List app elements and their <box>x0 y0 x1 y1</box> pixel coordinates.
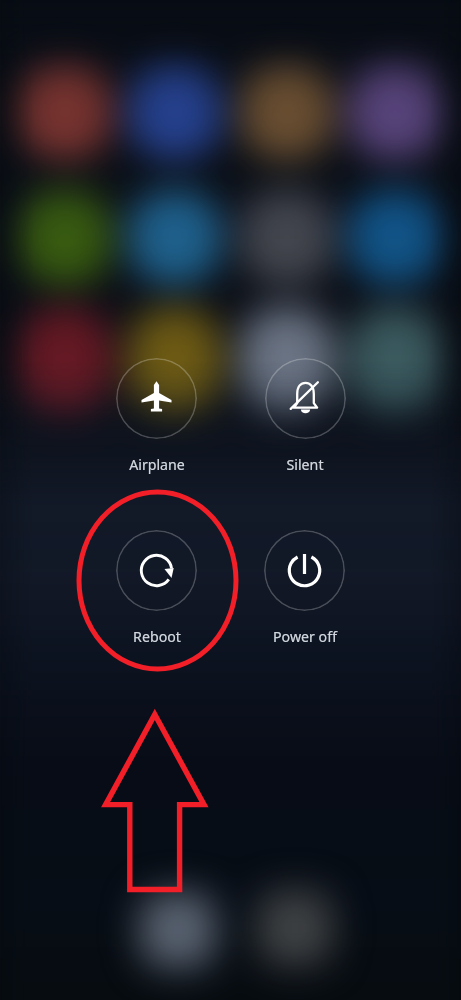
staticText: Silent <box>286 455 324 474</box>
staticText: Airplane <box>129 455 185 474</box>
button[interactable]: Airplane <box>116 358 197 439</box>
staticText: Reboot <box>133 627 181 646</box>
button[interactable]: Silent <box>265 358 346 439</box>
button[interactable]: Power off <box>264 530 345 611</box>
staticText: Power off <box>273 627 337 646</box>
button[interactable]: Reboot <box>116 530 197 611</box>
